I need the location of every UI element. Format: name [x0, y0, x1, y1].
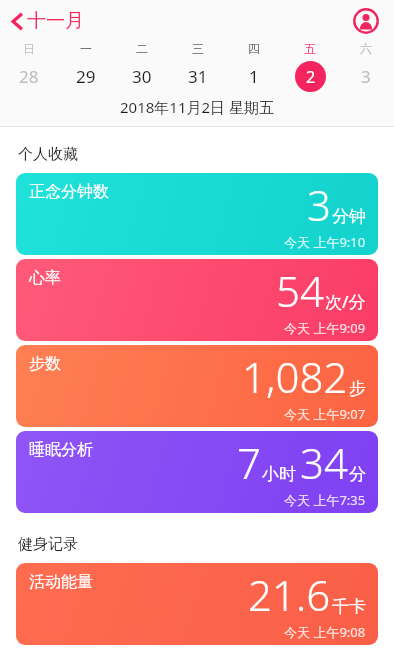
button[interactable]: 活动能量 [16, 563, 378, 645]
staticText: 睡眠分析 [29, 440, 93, 460]
staticText: 30 [132, 65, 152, 88]
button[interactable]: 心率 [16, 259, 378, 341]
staticText: 54 [276, 262, 324, 319]
staticText: 次/分 [325, 290, 366, 313]
button[interactable]: 30 [114, 60, 170, 93]
button[interactable]: 睡眠分析 [16, 431, 378, 513]
staticText: 今天 上午7:35 [284, 491, 366, 509]
staticText: 2018年11月2日 星期五 [120, 97, 274, 117]
button[interactable]: 1 [226, 60, 282, 93]
button[interactable]: 步数 [16, 345, 378, 427]
staticText: 今天 上午9:10 [284, 233, 366, 251]
staticText: 千卡 [332, 596, 366, 617]
staticText: 分钟 [332, 206, 366, 227]
staticText: 三 [192, 41, 204, 56]
staticText: 3 [361, 65, 371, 88]
staticText: 小时 [262, 464, 296, 485]
staticText: 十一月 [27, 9, 84, 33]
staticText: 1,082 [242, 348, 348, 405]
staticText: 31 [188, 65, 208, 88]
button[interactable]: 十一月 [0, 6, 94, 36]
staticText: 21.6 [248, 566, 331, 623]
button[interactable]: 2 [282, 60, 338, 93]
button[interactable]: 3 [338, 60, 394, 93]
staticText: 34 [300, 434, 348, 491]
staticText: 今天 上午9:09 [284, 319, 366, 337]
staticText: 正念分钟数 [29, 182, 109, 202]
staticText: 3 [307, 176, 331, 233]
staticText: 今天 上午9:07 [284, 405, 366, 423]
staticText: 个人收藏 [18, 145, 78, 164]
staticText: 2 [306, 66, 316, 88]
staticText: 28 [19, 65, 39, 88]
button[interactable]: 31 [170, 60, 226, 93]
staticText: 今天 上午9:08 [284, 623, 366, 641]
staticText: 步数 [29, 354, 61, 374]
staticText: 日 [23, 41, 35, 56]
staticText: 29 [76, 65, 96, 88]
staticText: 二 [136, 41, 148, 56]
staticText: 健身记录 [18, 535, 78, 554]
staticText: 1 [249, 65, 259, 88]
button[interactable]: 个人资料 [351, 6, 381, 36]
staticText: 步 [349, 378, 366, 399]
button[interactable]: 正念分钟数 [16, 173, 378, 255]
staticText: 7 [237, 434, 261, 491]
staticText: 四 [248, 41, 260, 56]
staticText: 分 [349, 464, 366, 485]
staticText: 一 [80, 41, 92, 56]
staticText: 五 [304, 41, 316, 56]
button[interactable]: 29 [57, 60, 114, 93]
button[interactable]: 28 [0, 60, 57, 93]
staticText: 心率 [29, 268, 61, 288]
staticText: 六 [360, 41, 372, 56]
staticText: 活动能量 [29, 572, 93, 592]
